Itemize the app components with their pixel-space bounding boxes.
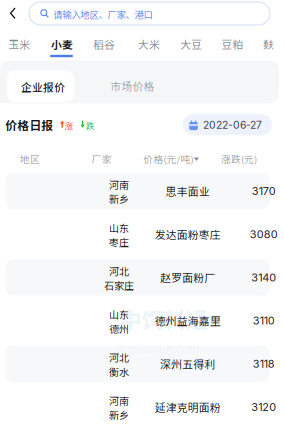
- staticText: 麸: [263, 36, 274, 52]
- staticText: 新乡: [109, 407, 129, 422]
- staticText: 稻谷: [93, 36, 115, 52]
- staticText: 豆粕: [222, 36, 244, 52]
- button[interactable]: Back: [2, 1, 24, 25]
- staticText: 石家庄: [104, 278, 134, 292]
- staticText: 河南: [109, 177, 129, 192]
- button[interactable]: Search: [29, 2, 270, 25]
- staticText: 山东: [109, 307, 129, 321]
- button[interactable]: 小麦: [51, 28, 81, 60]
- staticText: 2022-06-27: [203, 119, 262, 131]
- staticText: 市场价格: [110, 78, 154, 94]
- staticText: 企业报价: [21, 79, 65, 95]
- staticText: 玉米: [8, 36, 30, 52]
- staticText: 大米: [138, 36, 160, 52]
- staticText: 大豆: [180, 36, 202, 52]
- button[interactable]: 玉米: [8, 28, 38, 60]
- staticText: 价格(元/吨): [144, 152, 194, 166]
- staticText: 厂家: [92, 152, 112, 166]
- button[interactable]: 河南: [6, 173, 270, 209]
- staticText: 3120: [251, 400, 276, 414]
- staticText: 涨跌(元): [221, 152, 257, 166]
- staticText: 河北: [109, 264, 129, 278]
- staticText: www.cctin.com: [118, 342, 199, 356]
- staticText: 3140: [251, 271, 276, 284]
- button[interactable]: 大米: [138, 28, 168, 60]
- staticText: 3170: [252, 184, 276, 198]
- staticText: 请输入地区、厂家、港口: [53, 7, 152, 21]
- staticText: 3080: [250, 228, 278, 241]
- staticText: 涨: [65, 120, 73, 132]
- staticText: 德州: [109, 321, 129, 336]
- staticText: 河南: [109, 393, 129, 408]
- staticText: 枣庄: [109, 235, 129, 249]
- staticText: 山东: [109, 220, 129, 235]
- button[interactable]: 2022-06-27: [183, 114, 272, 135]
- staticText: 小麦: [51, 36, 73, 52]
- staticText: 德州益海嘉里: [155, 313, 221, 328]
- staticText: 赵罗面粉厂: [160, 270, 215, 285]
- staticText: 中饲料通: [120, 303, 208, 335]
- button[interactable]: 大豆: [180, 28, 210, 60]
- staticText: 河北: [109, 350, 129, 364]
- button[interactable]: 河北: [6, 345, 270, 382]
- staticText: 延津克明面粉: [155, 399, 221, 415]
- button[interactable]: 山东: [6, 216, 270, 252]
- staticText: 3118: [253, 357, 275, 370]
- staticText: 跌: [86, 120, 94, 132]
- staticText: 发达面粉枣庄: [155, 226, 221, 242]
- staticText: 3110: [253, 314, 275, 327]
- staticText: 深州五得利: [160, 356, 215, 372]
- button[interactable]: 市场价格: [97, 70, 167, 102]
- staticText: 价格日报: [5, 116, 53, 133]
- staticText: 新乡: [109, 191, 129, 206]
- button[interactable]: 河南: [6, 389, 270, 425]
- button[interactable]: 山东: [6, 302, 270, 339]
- button[interactable]: 麸: [263, 28, 284, 60]
- staticText: 衡水: [109, 364, 129, 379]
- staticText: 思丰面业: [166, 183, 210, 199]
- button[interactable]: 稻谷: [93, 28, 123, 60]
- button[interactable]: 豆粕: [222, 28, 252, 60]
- button[interactable]: 河北: [6, 259, 270, 296]
- staticText: 地区: [20, 152, 40, 166]
- button[interactable]: 企业报价: [7, 69, 74, 103]
